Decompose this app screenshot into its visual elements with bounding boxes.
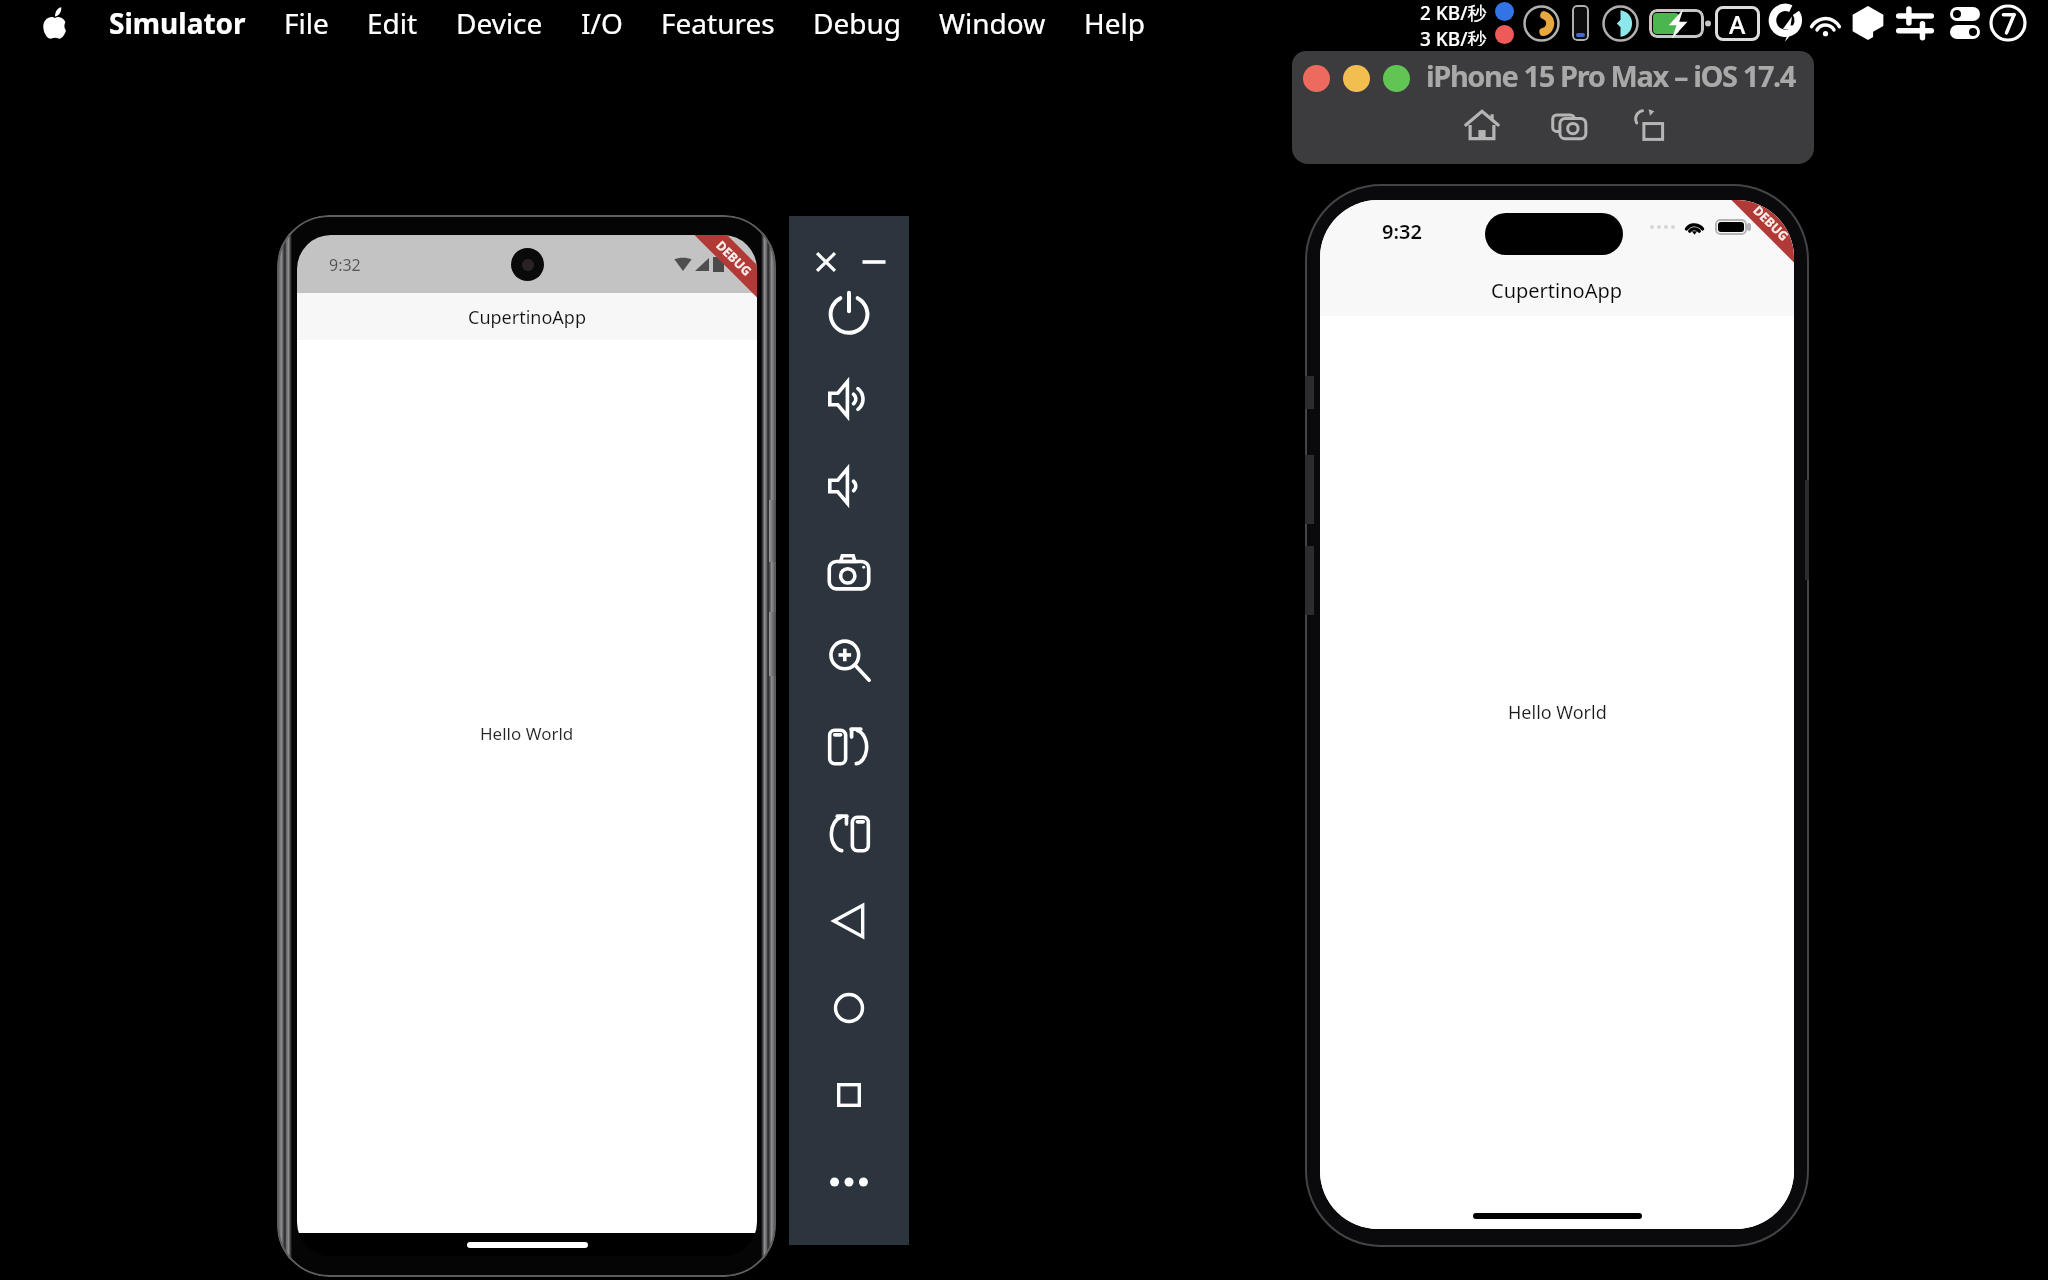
staticText: Device xyxy=(456,4,543,42)
button[interactable]: Volume down xyxy=(789,443,909,529)
staticText: A xyxy=(1729,7,1746,41)
button[interactable]: Apple menu xyxy=(20,0,90,46)
staticText: 9:32 xyxy=(1382,218,1422,245)
button[interactable]: Screenshot xyxy=(1552,107,1588,143)
staticText: 9:32 xyxy=(329,254,361,276)
button[interactable]: Close window xyxy=(1303,65,1330,92)
button[interactable]: Back xyxy=(789,878,909,964)
staticText: CupertinoApp xyxy=(468,305,586,330)
button[interactable]: Simulator xyxy=(90,0,265,46)
staticText: 2 KB/秒 xyxy=(1420,0,1487,26)
staticText: Edit xyxy=(367,4,418,42)
staticText: DEBUG xyxy=(712,237,755,280)
button[interactable]: Edit xyxy=(348,0,437,46)
button[interactable]: Home xyxy=(789,965,909,1051)
button[interactable]: Rotate right xyxy=(789,791,909,877)
staticText: Help xyxy=(1084,4,1145,42)
button[interactable]: Device xyxy=(437,0,562,46)
staticText: Simulator xyxy=(109,4,246,42)
button[interactable]: Home xyxy=(1464,107,1500,143)
button[interactable]: Overview xyxy=(789,1052,909,1138)
staticText: iPhone 15 Pro Max – iOS 17.4 xyxy=(1426,56,1796,95)
button[interactable]: Power xyxy=(789,269,909,355)
button[interactable]: Features xyxy=(642,0,794,46)
staticText: 3 KB/秒 xyxy=(1420,26,1487,46)
button[interactable]: Volume up xyxy=(789,356,909,442)
staticText: Hello World xyxy=(1508,700,1607,725)
button[interactable]: I/O xyxy=(562,0,642,46)
button[interactable]: Minimize emulator xyxy=(858,246,890,278)
staticText: Hello World xyxy=(480,722,574,745)
staticText: Debug xyxy=(813,4,901,42)
button[interactable]: Minimize window xyxy=(1343,65,1370,92)
button[interactable]: Record screen xyxy=(1632,107,1668,143)
staticText: Window xyxy=(939,4,1046,42)
button[interactable]: File xyxy=(265,0,348,46)
button[interactable]: Window xyxy=(920,0,1065,46)
staticText: Features xyxy=(661,4,775,42)
button[interactable]: Help xyxy=(1065,0,1164,46)
button[interactable]: Take screenshot xyxy=(789,530,909,616)
staticText: CupertinoApp xyxy=(1491,277,1623,304)
button[interactable]: Close emulator xyxy=(810,246,842,278)
button[interactable]: Zoom window xyxy=(1383,65,1410,92)
button[interactable]: Rotate left xyxy=(789,704,909,790)
button[interactable]: More xyxy=(789,1139,909,1225)
staticText: File xyxy=(284,4,329,42)
staticText: I/O xyxy=(581,4,623,42)
button[interactable]: Debug xyxy=(794,0,920,46)
staticText: DEBUG xyxy=(1749,202,1792,245)
button[interactable]: Zoom xyxy=(789,617,909,703)
